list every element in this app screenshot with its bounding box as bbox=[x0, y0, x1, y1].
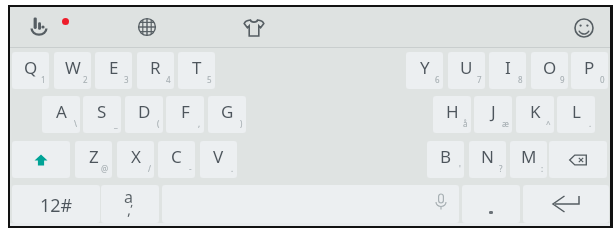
button[interactable]: Space bbox=[162, 185, 459, 223]
button[interactable]: 12# bbox=[12, 185, 100, 223]
button[interactable]: A bbox=[42, 96, 80, 133]
button[interactable]: Symbols bbox=[101, 185, 159, 223]
button[interactable]: Z bbox=[75, 141, 112, 178]
staticText: L bbox=[572, 100, 581, 123]
button[interactable]: Y bbox=[406, 52, 443, 89]
staticText: _ bbox=[114, 118, 118, 129]
staticText: 12# bbox=[40, 193, 73, 218]
staticText: ( bbox=[157, 118, 160, 129]
staticText: 4 bbox=[166, 74, 171, 85]
staticText: a bbox=[124, 186, 133, 208]
button[interactable]: B bbox=[427, 141, 464, 178]
staticText: B bbox=[440, 145, 452, 168]
staticText: ? bbox=[499, 163, 503, 174]
button[interactable]: Period bbox=[462, 185, 520, 223]
button[interactable]: M bbox=[510, 141, 547, 178]
staticText: F bbox=[181, 100, 190, 123]
button[interactable]: Q bbox=[12, 52, 49, 89]
staticText: 2 bbox=[83, 74, 88, 85]
staticText: H bbox=[446, 100, 459, 123]
button[interactable]: L bbox=[557, 96, 595, 133]
button[interactable]: Gesture typing bbox=[20, 7, 58, 45]
staticText: 7 bbox=[477, 74, 482, 85]
button[interactable]: J bbox=[474, 96, 512, 133]
staticText: J bbox=[491, 100, 496, 123]
staticText: W bbox=[65, 56, 81, 79]
button[interactable]: Switch language bbox=[128, 8, 166, 46]
button[interactable]: Enter bbox=[523, 185, 609, 223]
button[interactable]: R bbox=[137, 52, 174, 89]
staticText: M bbox=[521, 145, 537, 168]
staticText: 9 bbox=[560, 74, 565, 85]
staticText: N bbox=[481, 145, 494, 168]
button[interactable]: N bbox=[469, 141, 506, 178]
button[interactable]: V bbox=[200, 141, 237, 178]
staticText: ) bbox=[240, 118, 243, 129]
staticText: U bbox=[460, 56, 473, 79]
button[interactable]: F bbox=[166, 96, 204, 133]
staticText: Z bbox=[89, 145, 99, 168]
staticText: , bbox=[130, 192, 134, 210]
staticText: æ bbox=[502, 118, 509, 129]
staticText: K bbox=[530, 100, 541, 123]
staticText: . bbox=[231, 163, 234, 174]
button[interactable]: C bbox=[158, 141, 195, 178]
staticText: 0 bbox=[600, 74, 605, 85]
button[interactable]: E bbox=[95, 52, 132, 89]
staticText: X bbox=[131, 145, 141, 168]
staticText: O bbox=[543, 56, 557, 79]
button[interactable]: H bbox=[433, 96, 471, 133]
staticText: \ bbox=[74, 118, 77, 129]
staticText: , bbox=[198, 118, 201, 129]
staticText: . bbox=[589, 118, 592, 129]
staticText: 8 bbox=[518, 74, 523, 85]
button[interactable]: I bbox=[489, 52, 526, 89]
staticText: R bbox=[150, 56, 161, 79]
button[interactable]: O bbox=[531, 52, 568, 89]
button[interactable]: T bbox=[178, 52, 215, 89]
button[interactable]: Shift bbox=[12, 141, 70, 178]
staticText: S bbox=[97, 100, 107, 123]
staticText: 6 bbox=[435, 74, 440, 85]
staticText: E bbox=[109, 56, 119, 79]
staticText: 5 bbox=[207, 74, 212, 85]
button[interactable]: G bbox=[208, 96, 246, 133]
staticText: G bbox=[221, 100, 234, 123]
staticText: @ bbox=[101, 163, 109, 174]
staticText: D bbox=[138, 100, 151, 123]
staticText: : bbox=[541, 163, 544, 174]
staticText: Q bbox=[24, 56, 38, 79]
staticText: Y bbox=[420, 56, 430, 79]
button[interactable]: K bbox=[516, 96, 554, 133]
button[interactable]: Emoji bbox=[565, 9, 603, 47]
staticText: P bbox=[584, 56, 595, 79]
button[interactable]: P bbox=[571, 52, 608, 89]
button[interactable]: W bbox=[54, 52, 91, 89]
staticText: T bbox=[192, 56, 202, 79]
button[interactable]: S bbox=[83, 96, 121, 133]
button[interactable]: U bbox=[448, 52, 485, 89]
staticText: å bbox=[463, 118, 468, 129]
staticText: ' bbox=[459, 163, 461, 174]
staticText: , bbox=[127, 199, 132, 219]
staticText: A bbox=[56, 100, 67, 123]
staticText: ^ bbox=[546, 118, 551, 129]
staticText: I bbox=[505, 56, 511, 79]
staticText: 3 bbox=[124, 74, 129, 85]
staticText: 1 bbox=[41, 74, 46, 85]
staticText: / bbox=[148, 163, 151, 174]
button[interactable]: Theme bbox=[235, 9, 273, 47]
staticText: - bbox=[189, 163, 192, 174]
button[interactable]: X bbox=[117, 141, 154, 178]
staticText: C bbox=[171, 145, 182, 168]
staticText: V bbox=[213, 145, 224, 168]
button[interactable]: D bbox=[125, 96, 163, 133]
button[interactable]: Backspace bbox=[549, 141, 607, 178]
